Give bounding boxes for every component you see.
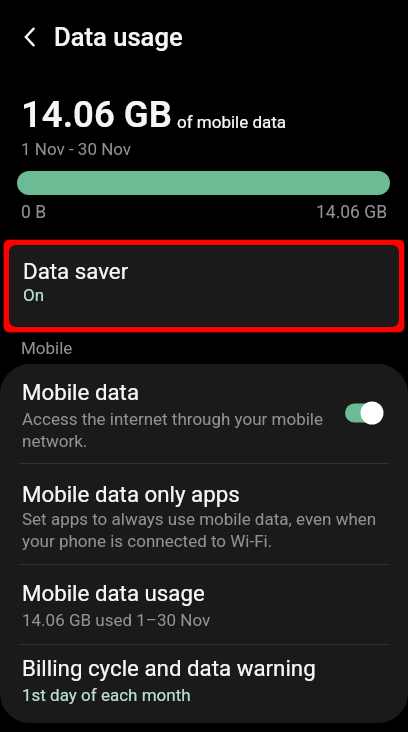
button[interactable]: Mobile data toggle xyxy=(350,400,390,430)
button[interactable]: Data saver xyxy=(9,245,399,327)
button[interactable]: Back xyxy=(14,21,46,53)
staticText: Mobile data xyxy=(22,379,140,405)
staticText: Data saver xyxy=(23,258,129,284)
staticText: 14.06 GB xyxy=(21,93,172,136)
button[interactable]: Mobile data usage xyxy=(0,565,408,644)
staticText: On xyxy=(23,285,45,305)
staticText: 14.06 GB used 1–30 Nov xyxy=(22,610,211,630)
staticText: 0 B xyxy=(21,202,47,223)
button[interactable]: Mobile data only apps xyxy=(0,464,408,564)
staticText: 1 Nov - 30 Nov xyxy=(21,139,132,159)
staticText: 1st day of each month xyxy=(22,685,191,705)
staticText: Access the internet through your mobile … xyxy=(22,409,340,451)
button[interactable]: Mobile data xyxy=(0,364,408,463)
staticText: of mobile data xyxy=(177,112,287,132)
staticText: 14.06 GB xyxy=(316,202,388,223)
staticText: Set apps to always use mobile data, even… xyxy=(22,509,390,551)
staticText: Billing cycle and data warning xyxy=(22,655,316,681)
staticText: Mobile xyxy=(21,338,73,358)
staticText: Mobile data only apps xyxy=(22,481,240,507)
staticText: Mobile data usage xyxy=(22,580,205,606)
staticText: Data usage xyxy=(54,22,183,52)
button[interactable]: Billing cycle and data warning xyxy=(0,645,408,723)
